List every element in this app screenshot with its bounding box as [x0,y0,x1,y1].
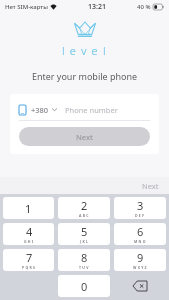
button[interactable]: 5 [58,223,110,245]
staticText: W X Y Z [133,265,147,270]
button[interactable]: Delete [114,275,166,297]
staticText: 6 [137,224,144,239]
staticText: P Q R S [22,265,36,270]
staticText: Нет SIM-карты [5,3,48,11]
staticText: M N O [134,239,146,244]
button[interactable]: 7 [3,249,54,271]
button[interactable]: 2 [58,197,110,219]
staticText: +380 [31,105,49,115]
staticText: 0 [81,279,88,294]
button[interactable]: 6 [114,223,166,245]
other: Phone [19,105,26,115]
staticText: G H I [24,239,34,244]
staticText: 4 [26,224,33,239]
staticText: 13:21 [88,2,106,12]
staticText: 3 [137,198,144,213]
staticText: 7 [26,250,33,265]
staticText: T U V [79,265,89,270]
staticText: 40 % [137,3,151,11]
button[interactable]: 3 [114,197,166,219]
staticText: 1 [25,201,32,216]
button[interactable]: 4 [3,223,54,245]
staticText: Phone number [65,105,118,115]
button[interactable]: 9 [114,249,166,271]
button[interactable]: 8 [58,249,110,271]
button[interactable]: Next [19,127,150,146]
button[interactable]: 1 [3,197,54,219]
staticText: 8 [81,250,88,265]
staticText: 5 [81,224,88,239]
staticText: Next [142,181,159,191]
staticText: Enter your mobile phone [0,70,169,82]
staticText: J K L [80,239,89,244]
staticText: 9 [137,250,144,265]
staticText: 2 [81,198,88,213]
staticText: Next [76,132,93,142]
button[interactable]: 0 [58,275,110,297]
staticText: D E F [135,213,145,218]
staticText: A B C [79,213,89,218]
staticText: l e v e l [62,43,107,58]
button[interactable]: Next [132,177,169,194]
button[interactable]: Phone [19,102,150,117]
